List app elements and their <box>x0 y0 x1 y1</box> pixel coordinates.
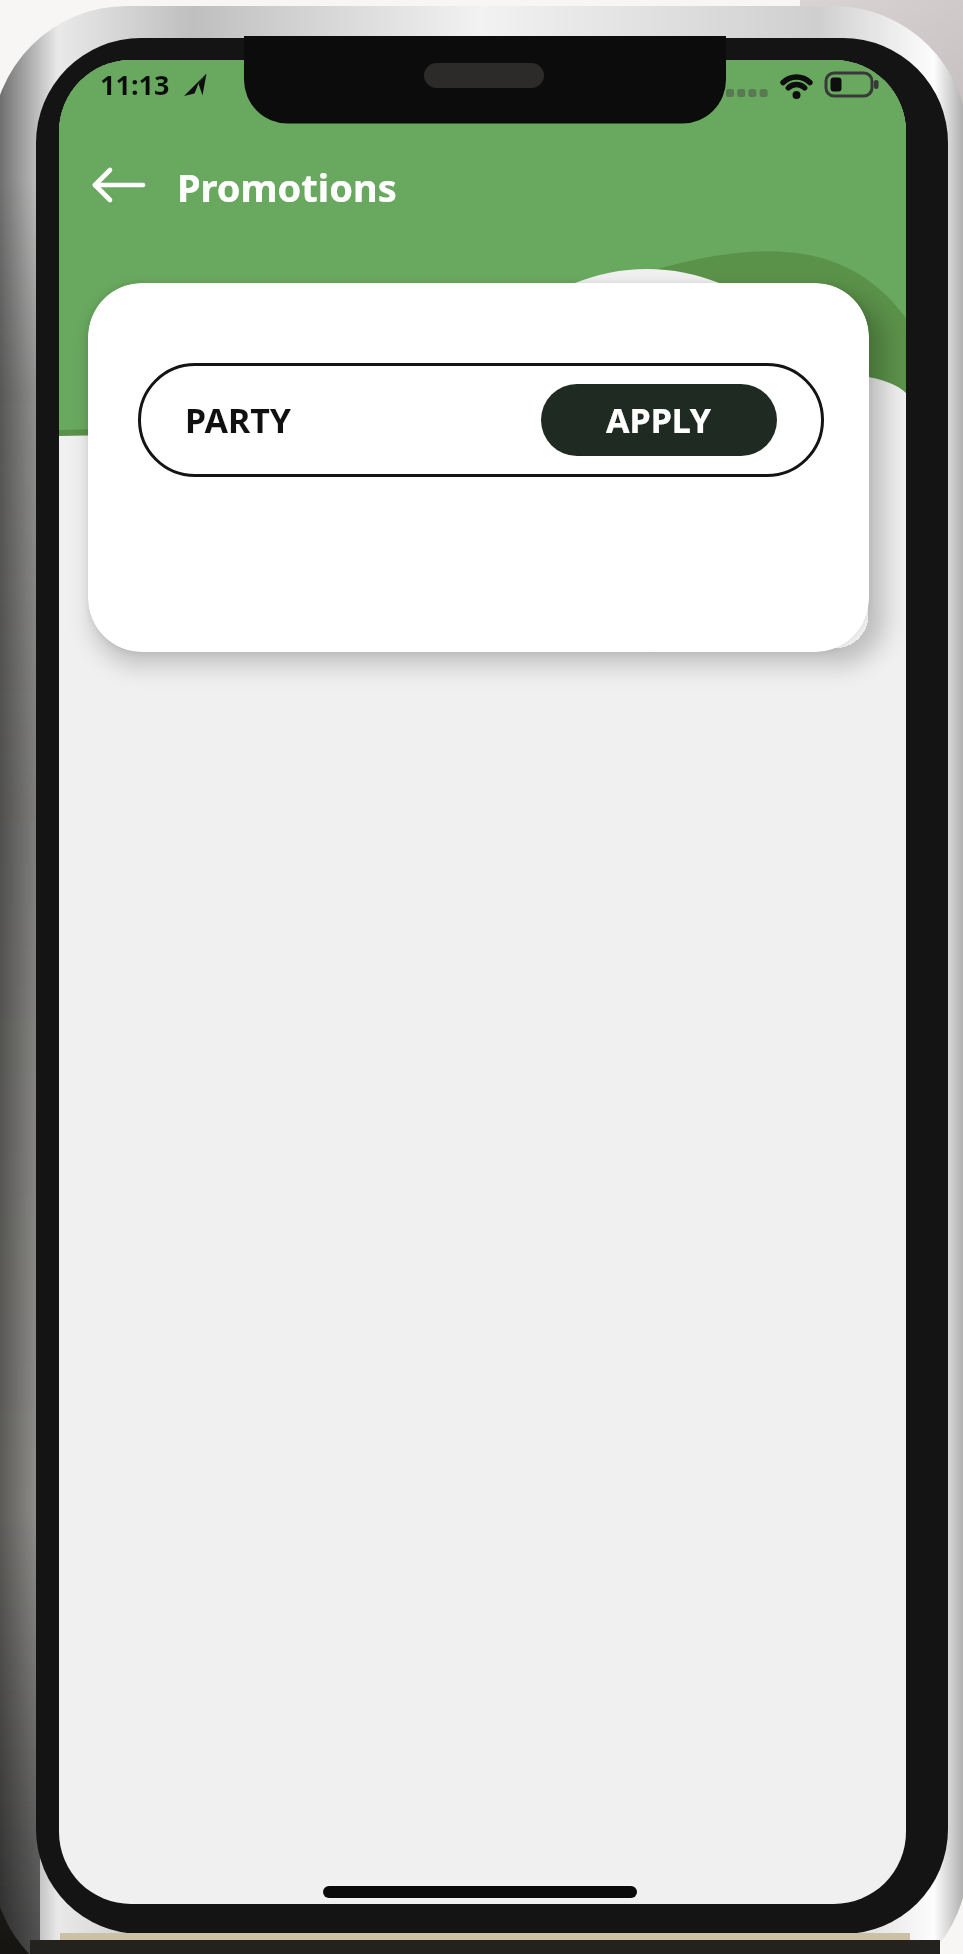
button[interactable]: PARTY <box>138 363 824 477</box>
staticText: 11:13 <box>100 66 170 103</box>
staticText: APPLY <box>606 397 712 443</box>
staticText: Promotions <box>177 161 397 213</box>
button[interactable] <box>79 165 159 209</box>
staticText: PARTY <box>185 397 292 443</box>
button[interactable]: APPLY <box>541 384 777 456</box>
